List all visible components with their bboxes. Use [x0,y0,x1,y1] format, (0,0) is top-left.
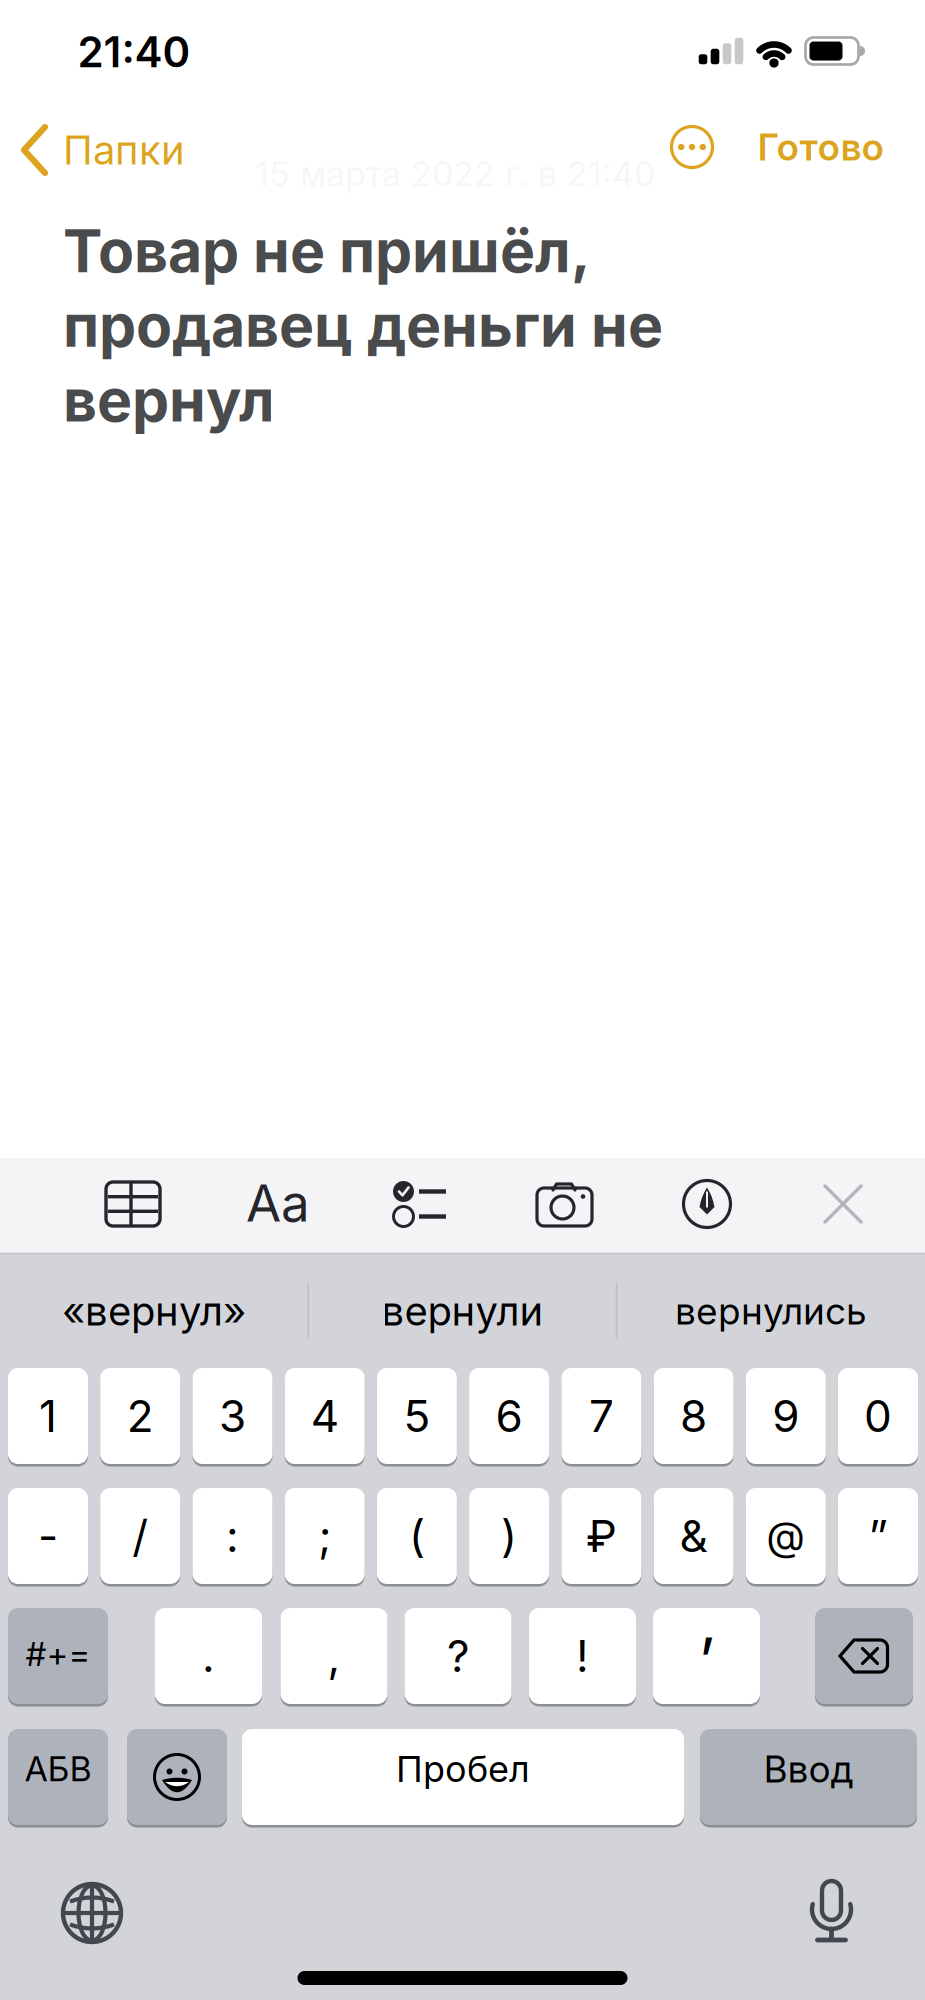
staticText: ; [318,1510,331,1562]
button[interactable]: 7 [561,1366,641,1465]
staticText: ’ [698,1623,714,1696]
button[interactable]: ; [285,1486,365,1585]
staticText: Папки [63,126,185,174]
staticText: 0 [864,1390,892,1442]
button[interactable]: 9 [746,1366,826,1465]
staticText: - [38,1510,58,1562]
staticText: ₽ [586,1510,617,1562]
button[interactable]: Сменить клавиатуру [63,1884,121,1942]
button[interactable]: Готово [757,125,884,169]
staticText: . [202,1630,215,1682]
staticText: ” [868,1510,887,1562]
staticText: ) [501,1510,517,1562]
staticText: & [680,1510,708,1562]
button[interactable]: 4 [285,1366,365,1465]
button[interactable]: 8 [654,1366,734,1465]
staticText: вернулись [675,1289,867,1333]
staticText: ! [576,1630,589,1682]
button[interactable]: : [192,1486,272,1585]
staticText: Ввод [763,1747,853,1791]
button[interactable]: ₽ [561,1486,641,1585]
button[interactable]: Диктовка [803,1879,859,1943]
button[interactable]: #+= [8,1606,108,1705]
staticText: 8 [680,1390,707,1442]
button[interactable]: 3 [192,1366,272,1465]
button[interactable]: Удалить [815,1606,913,1705]
button[interactable]: 0 [838,1366,918,1465]
staticText: вернули [381,1287,543,1335]
staticText: 21:40 [77,27,190,77]
staticText: 9 [772,1390,799,1442]
button[interactable]: Назад к папкам [20,124,185,176]
staticText: вернул [63,365,275,435]
staticText: 4 [311,1390,339,1442]
button[interactable]: Формат [246,1173,310,1233]
button[interactable]: Закрыть [823,1184,863,1224]
button[interactable]: Ещё [671,126,712,167]
button[interactable]: 5 [377,1366,457,1465]
staticText: 3 [219,1390,246,1442]
staticText: 2 [127,1390,154,1442]
staticText: Пробел [396,1748,530,1790]
staticText: ( [409,1510,425,1562]
button[interactable]: / [100,1486,180,1585]
staticText: Товар не пришёл, [63,216,591,286]
button[interactable]: «вернул» [4,1261,304,1361]
staticText: #+= [25,1634,90,1673]
staticText: ? [447,1630,469,1682]
staticText: 6 [496,1390,523,1442]
button[interactable]: & [654,1486,734,1585]
staticText: 15 марта 2022 г. в 21:40 [255,154,655,194]
staticText: : [226,1510,239,1562]
button[interactable]: ? [404,1606,511,1705]
staticText: 5 [403,1390,430,1442]
button[interactable]: Ввод [700,1727,917,1826]
staticText: «вернул» [62,1287,246,1335]
button[interactable]: Камера [536,1181,594,1227]
staticText: продавец деньги не [63,291,663,360]
button[interactable]: ’ [653,1606,760,1705]
button[interactable]: ” [838,1486,918,1585]
button[interactable]: Список [393,1180,449,1227]
button[interactable]: ) [469,1486,549,1585]
button[interactable]: вернули [312,1261,612,1361]
staticText: / [132,1510,148,1562]
staticText: , [327,1630,340,1682]
staticText: @ [766,1512,805,1560]
button[interactable]: 1 [8,1366,88,1465]
button[interactable]: Таблица [105,1181,161,1227]
staticText: АБВ [24,1749,91,1789]
staticText: Aa [246,1173,310,1233]
button[interactable]: - [8,1486,88,1585]
button[interactable]: Разметка [683,1180,730,1227]
button[interactable]: Пробел [242,1727,684,1826]
button[interactable]: ( [377,1486,457,1585]
button[interactable]: ! [529,1606,636,1705]
button[interactable]: 2 [100,1366,180,1465]
button[interactable]: Эмодзи [127,1727,227,1826]
staticText: Готово [757,125,884,169]
button[interactable]: , [280,1606,387,1705]
staticText: 1 [39,1390,57,1442]
button[interactable]: 6 [469,1366,549,1465]
button[interactable]: АБВ [8,1727,108,1826]
button[interactable]: @ [746,1486,826,1585]
staticText: 7 [589,1390,614,1442]
button[interactable]: . [155,1606,262,1705]
button[interactable]: вернулись [621,1261,921,1361]
